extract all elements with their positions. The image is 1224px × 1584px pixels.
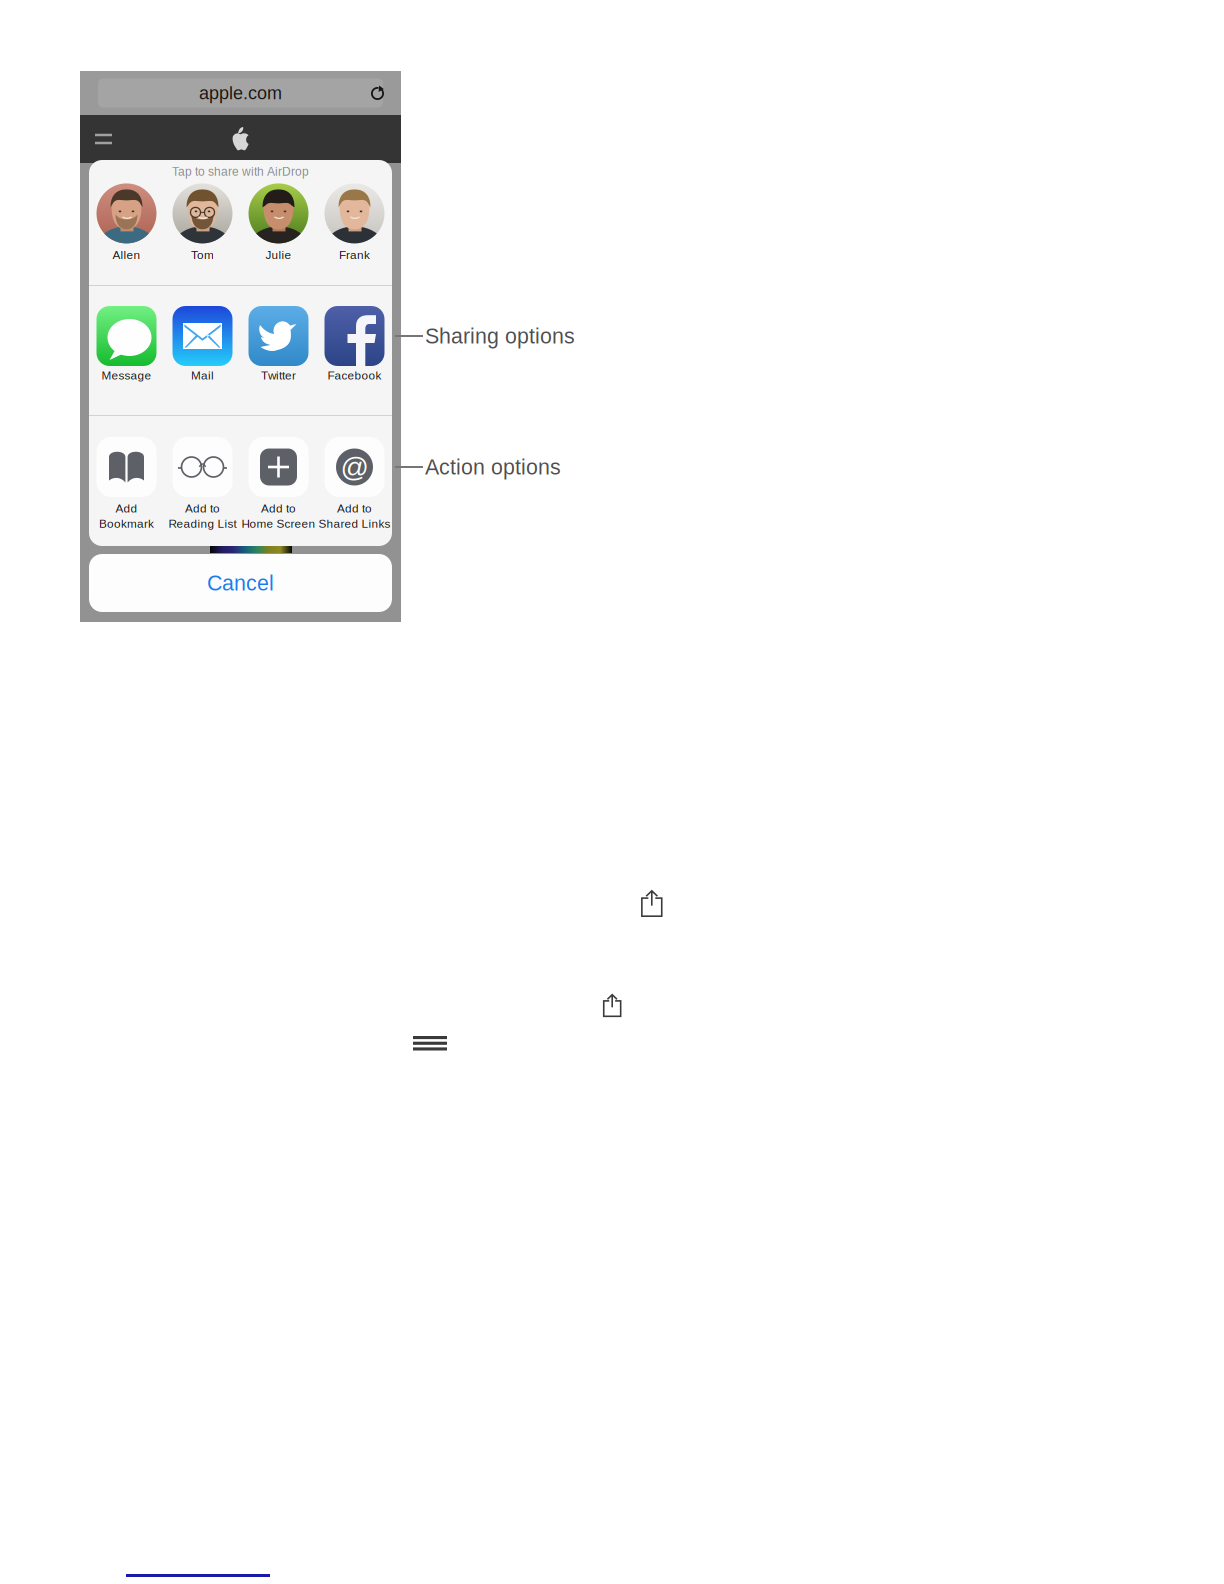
button[interactable]: Frank xyxy=(324,183,384,261)
staticText: Cancel xyxy=(207,571,274,595)
staticText: Message xyxy=(101,369,151,382)
button[interactable]: Add to xyxy=(172,437,232,530)
button[interactable]: Message xyxy=(96,306,156,382)
staticText: Bookmark xyxy=(99,517,154,530)
staticText: Reading List xyxy=(168,517,236,530)
staticText: Twitter xyxy=(261,369,296,382)
staticText: Facebook xyxy=(327,369,381,382)
staticText: Add xyxy=(115,502,137,515)
button[interactable]: Add xyxy=(96,437,156,530)
button[interactable]: Julie xyxy=(248,183,308,261)
button[interactable]: Allen xyxy=(96,183,156,261)
button[interactable]: Mail xyxy=(172,306,232,382)
button[interactable]: Facebook xyxy=(324,306,384,382)
staticText: @ xyxy=(340,451,368,483)
staticText: Add to xyxy=(261,502,296,515)
button[interactable]: @ xyxy=(324,437,384,530)
button[interactable]: Reload xyxy=(364,79,391,106)
button[interactable]: Add to xyxy=(248,437,308,530)
staticText: Add to xyxy=(337,502,372,515)
staticText: Action options xyxy=(425,455,561,479)
staticText: Mail xyxy=(191,369,214,382)
button[interactable]: Tom xyxy=(172,183,232,261)
staticText: apple.com xyxy=(199,83,282,103)
staticText: Allen xyxy=(112,248,140,261)
staticText: Sharing options xyxy=(425,324,575,348)
button[interactable]: Cancel xyxy=(89,554,392,612)
staticText: Tom xyxy=(191,248,214,261)
staticText: Tap to share with AirDrop xyxy=(172,165,309,178)
staticText: Frank xyxy=(339,248,370,261)
staticText: Add to xyxy=(185,502,220,515)
staticText: Shared Links xyxy=(318,517,390,530)
staticText: Julie xyxy=(265,248,291,261)
staticText: Home Screen xyxy=(241,517,315,530)
button[interactable]: Twitter xyxy=(248,306,308,382)
button[interactable]: Menu xyxy=(87,124,120,154)
